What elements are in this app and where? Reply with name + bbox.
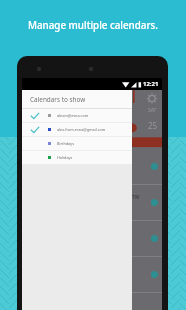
staticText: 12:21 [143,80,159,88]
staticText: Manage multiple calendars. [28,19,159,32]
button[interactable]: alexm@esna.com [22,109,132,122]
button[interactable]: Holidays [22,151,132,164]
button[interactable]: Birthdays [22,137,132,150]
staticText: 25 [148,120,158,131]
button[interactable]: alex.from.esna@gmail.com [22,123,132,136]
staticText: alexm@esna.com [57,113,89,118]
staticText: alex.from.esna@gmail.com [57,127,106,132]
staticText: SAT [148,107,157,114]
staticText: Holidays [57,155,73,160]
staticText: Birthdays [57,141,74,146]
staticText: Calendars to show [30,95,86,104]
staticText: TW [132,194,140,201]
